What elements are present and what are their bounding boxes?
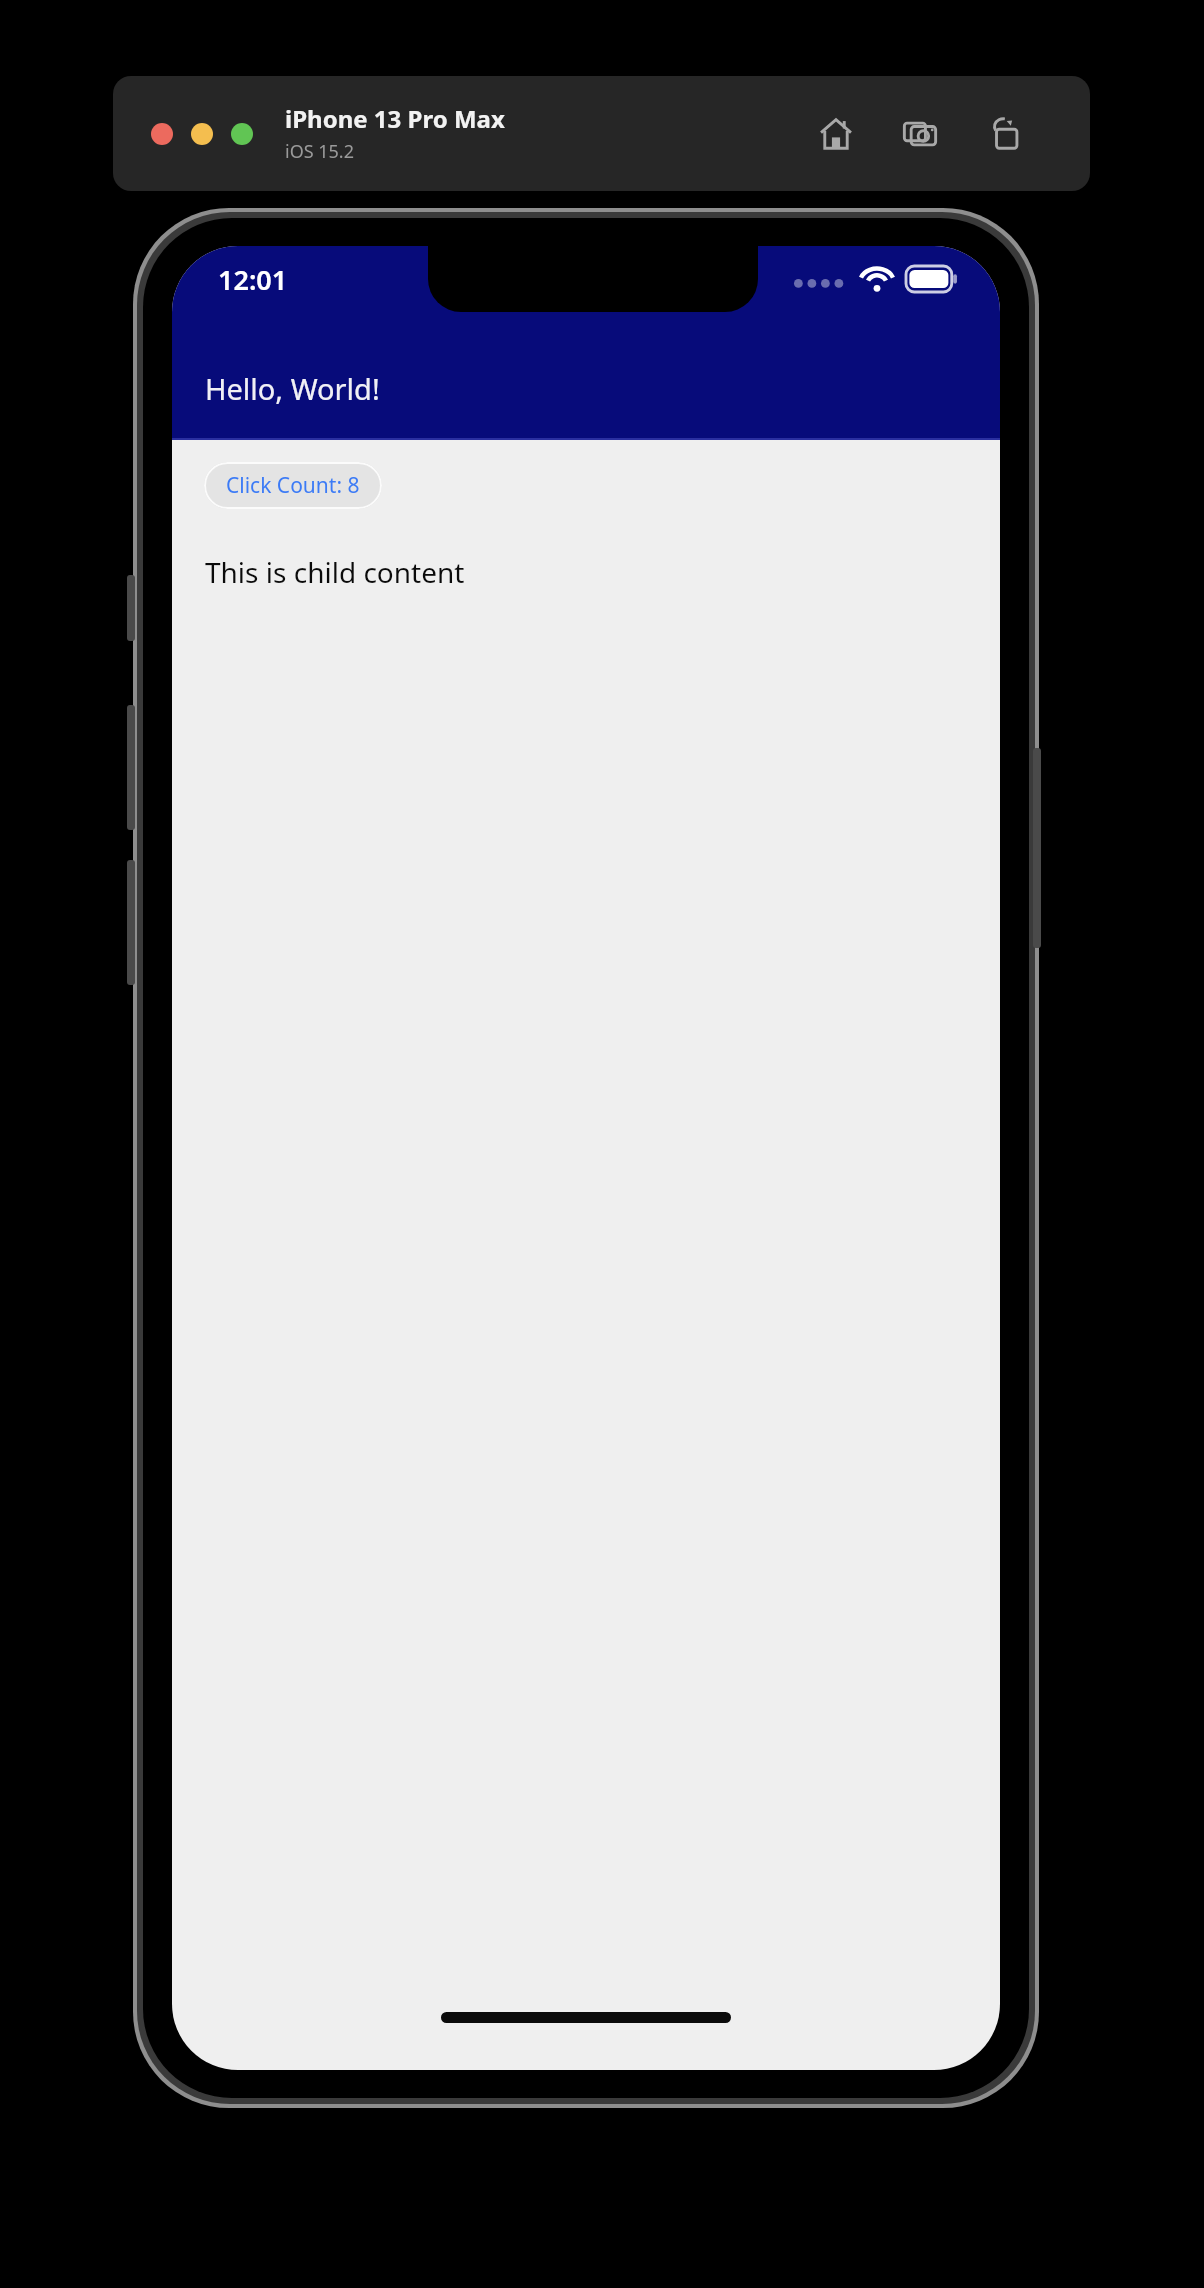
staticText: Click Count: 8 <box>226 471 360 500</box>
button[interactable]: Screenshot <box>897 111 943 157</box>
button[interactable]: Home <box>813 111 859 157</box>
button[interactable]: Click Count: 8 <box>204 462 382 509</box>
button[interactable]: Minimize <box>191 123 213 145</box>
button[interactable]: Close <box>151 123 173 145</box>
staticText: 12:01 <box>218 261 288 298</box>
staticText: Hello, World! <box>205 369 380 408</box>
button[interactable]: Rotate <box>981 111 1027 157</box>
button[interactable]: Zoom <box>231 123 253 145</box>
staticText: This is child content <box>205 553 465 591</box>
staticText: iOS 15.2 <box>285 139 354 164</box>
staticText: iPhone 13 Pro Max <box>285 102 505 135</box>
